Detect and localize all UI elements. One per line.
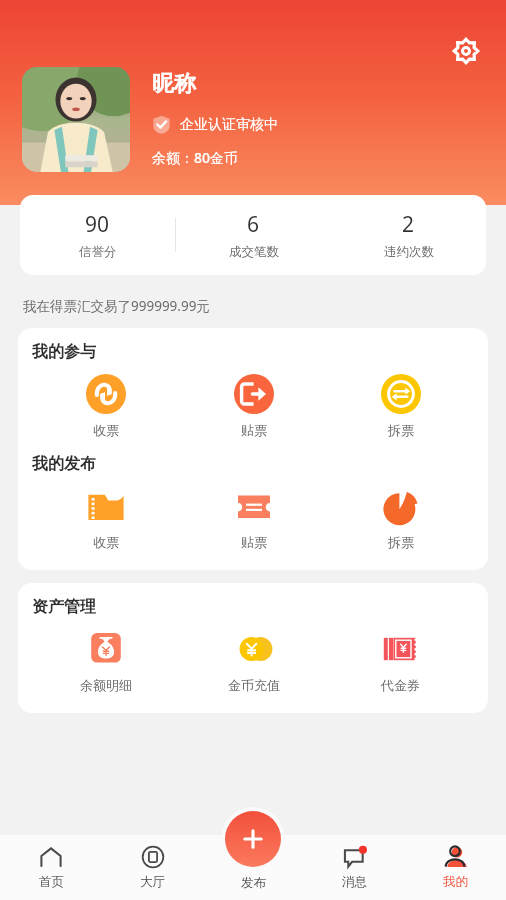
button[interactable]: 余额明细 — [32, 623, 180, 699]
staticText: 6 — [247, 210, 260, 239]
staticText: 企业认证审核中 — [180, 116, 278, 134]
staticText: 我在得票汇交易了999999.99元 — [23, 297, 210, 315]
staticText: 金币充值 — [228, 677, 280, 693]
button[interactable]: 拆票 — [327, 480, 474, 556]
button[interactable]: Settings — [446, 31, 486, 71]
staticText: 收票 — [93, 534, 119, 550]
button[interactable]: 消息 — [304, 835, 405, 900]
staticText: 拆票 — [388, 422, 414, 438]
staticText: 昵称 — [152, 70, 196, 98]
button[interactable]: 收票 — [32, 480, 180, 556]
staticText: 信誉分 — [79, 244, 117, 260]
button[interactable]: 发布 — [225, 811, 281, 867]
staticText: 消息 — [342, 874, 367, 890]
staticText: 发布 — [241, 875, 266, 891]
button[interactable]: 2 — [331, 210, 486, 260]
staticText: 90 — [85, 210, 110, 239]
staticText: 2 — [402, 210, 415, 239]
staticText: 我的 — [443, 874, 468, 890]
staticText: 收票 — [93, 422, 119, 438]
staticText: 成交笔数 — [229, 244, 279, 260]
staticText: 贴票 — [241, 534, 267, 550]
button[interactable]: 拆票 — [327, 368, 474, 444]
staticText: 贴票 — [241, 422, 267, 438]
button[interactable]: 首页 — [0, 835, 102, 900]
staticText: 资产管理 — [32, 597, 96, 617]
staticText: 首页 — [39, 874, 64, 890]
button[interactable]: 6 — [176, 210, 331, 260]
staticText: 我的参与 — [32, 342, 96, 362]
staticText: 违约次数 — [384, 244, 434, 260]
staticText: 大厅 — [140, 874, 165, 890]
button[interactable]: Avatar — [22, 67, 130, 172]
button[interactable]: 代金券 — [327, 623, 474, 699]
staticText: 余额明细 — [80, 677, 132, 693]
staticText: 我的发布 — [32, 454, 96, 474]
button[interactable]: 我的 — [405, 835, 506, 900]
staticText: 拆票 — [388, 534, 414, 550]
staticText: 代金券 — [381, 677, 420, 693]
button[interactable]: 收票 — [32, 368, 180, 444]
button[interactable]: 金币充值 — [180, 623, 327, 699]
button[interactable]: 90 — [20, 210, 175, 260]
button[interactable]: 大厅 — [102, 835, 203, 900]
button[interactable]: 贴票 — [180, 368, 327, 444]
button[interactable]: 贴票 — [180, 480, 327, 556]
staticText: 余额：80金币 — [152, 148, 239, 167]
